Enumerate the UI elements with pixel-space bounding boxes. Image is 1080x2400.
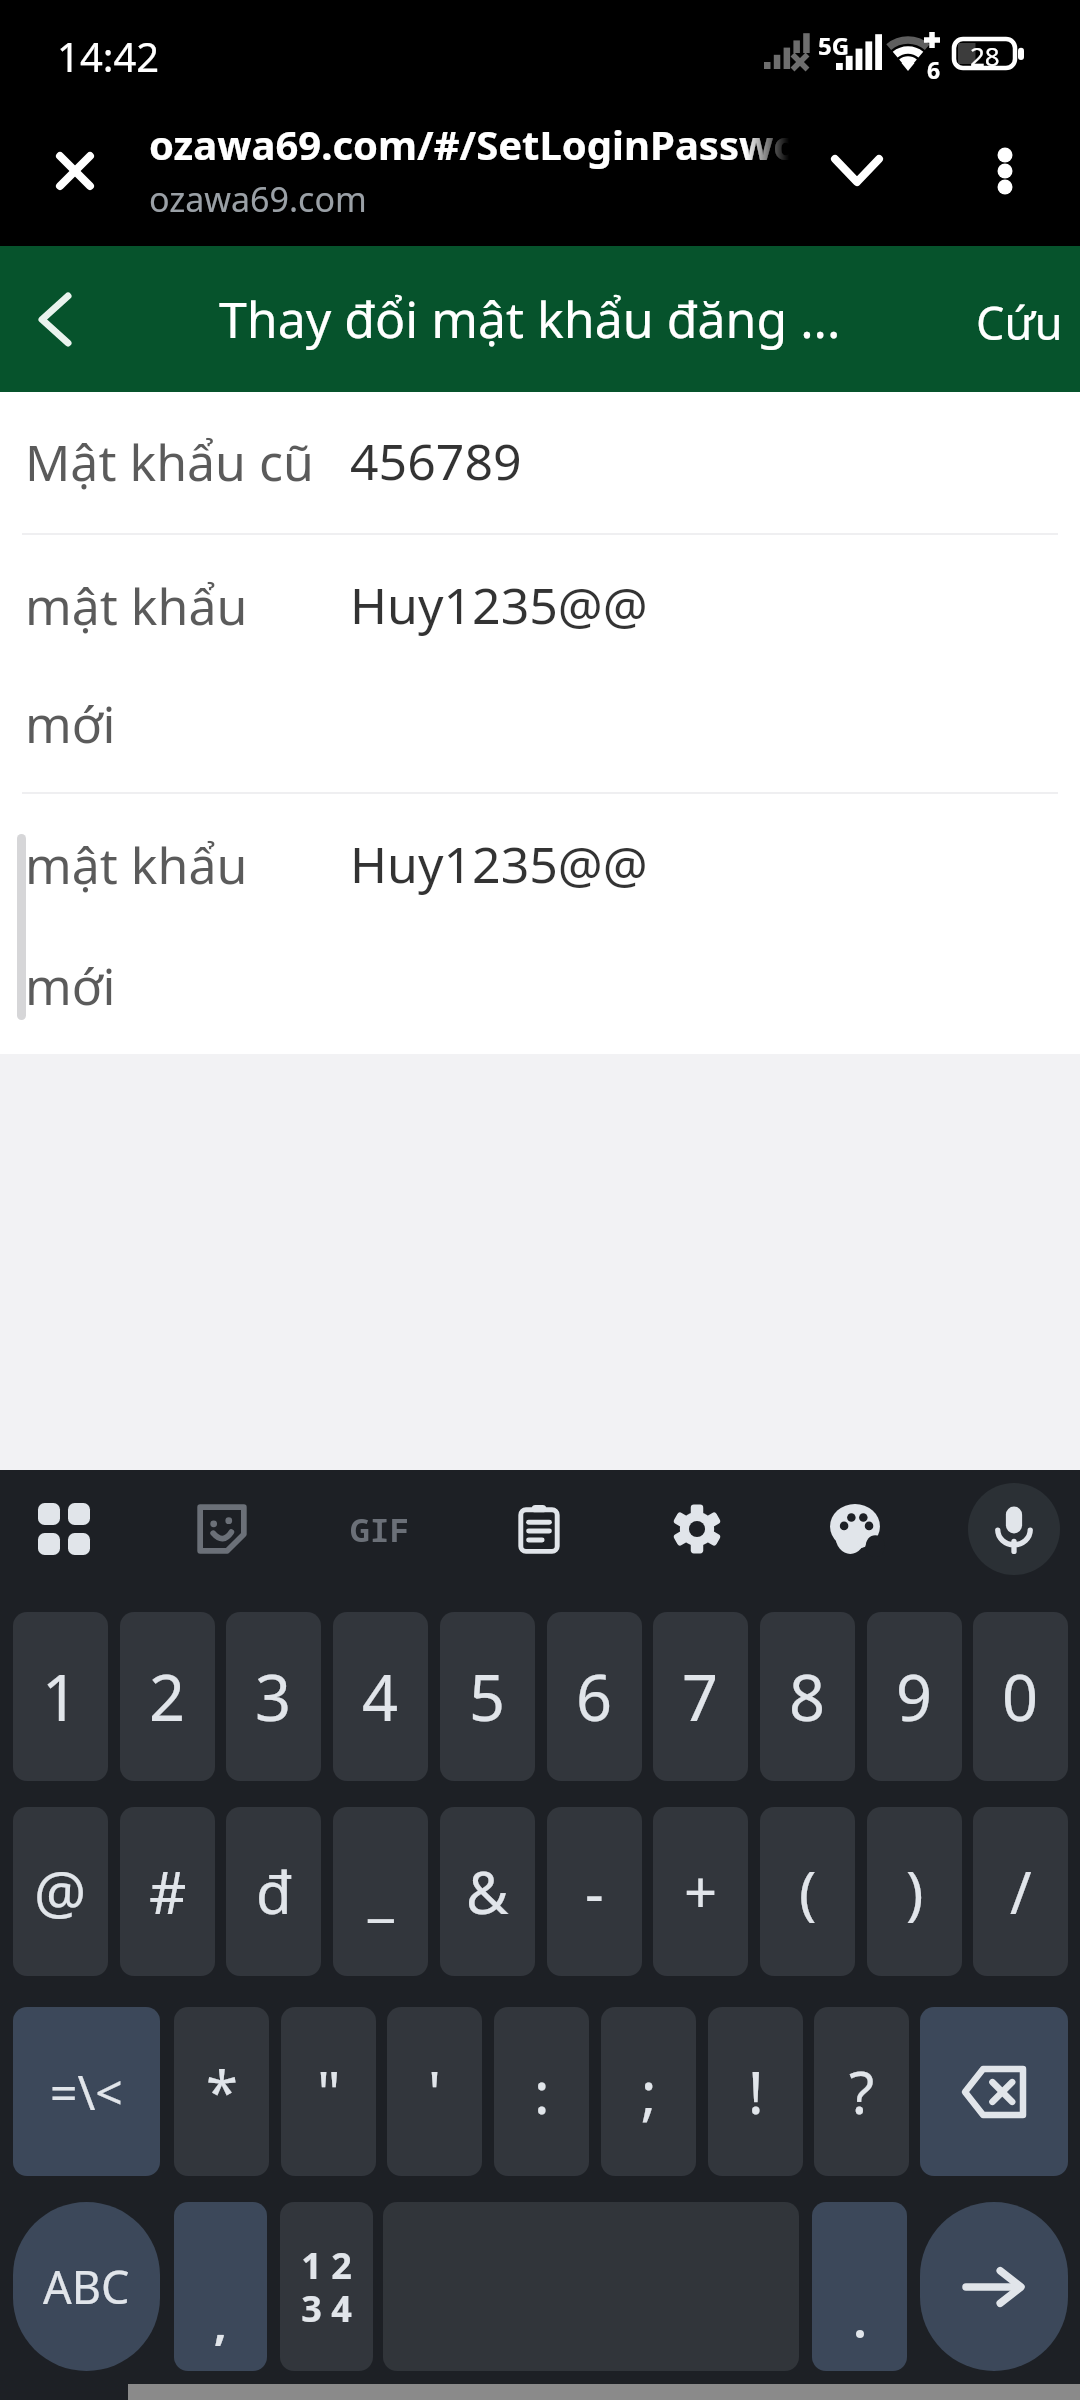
button[interactable]: 9 (867, 1612, 962, 1781)
button[interactable]: _ (333, 1807, 428, 1976)
staticText: : (534, 2052, 550, 2131)
button[interactable]: Mật khẩu cũ (0, 392, 1080, 533)
button[interactable]: & (440, 1807, 535, 1976)
button[interactable]: 1 (13, 1612, 108, 1781)
staticText: & (466, 1852, 509, 1931)
button[interactable]: * (174, 2007, 269, 2176)
button[interactable]: Comma (174, 2202, 267, 2371)
staticText: mới (25, 952, 116, 1020)
staticText: , (214, 2293, 227, 2353)
staticText: ; (641, 2052, 657, 2131)
button[interactable]: + (653, 1807, 748, 1976)
staticText: ) (906, 1852, 924, 1931)
button[interactable]: GIF (334, 1483, 426, 1575)
staticText: # (149, 1852, 187, 1931)
staticText: * (206, 2052, 238, 2131)
staticText: GIF (350, 1507, 410, 1552)
button[interactable]: Enter (920, 2202, 1068, 2371)
staticText: 6 (927, 54, 941, 85)
button[interactable]: Close (33, 129, 117, 213)
button[interactable]: Backspace (920, 2007, 1068, 2176)
button[interactable]: ; (601, 2007, 696, 2176)
button[interactable]: Expand URL (815, 129, 899, 213)
button[interactable]: ) (867, 1807, 962, 1976)
staticText: 5G (818, 29, 850, 62)
staticText: / (1010, 1852, 1032, 1931)
button[interactable]: @ (13, 1807, 108, 1976)
button[interactable]: Stickers (176, 1483, 268, 1575)
staticText: 14:42 (57, 29, 160, 83)
button[interactable]: " (281, 2007, 376, 2176)
staticText: 4 (362, 1654, 399, 1740)
button[interactable]: 8 (760, 1612, 855, 1781)
staticText: ozawa69.com (149, 176, 367, 222)
button[interactable]: 0 (973, 1612, 1068, 1781)
button[interactable]: More options (963, 129, 1047, 213)
staticText: _ (368, 1852, 394, 1931)
button[interactable]: Numbers (280, 2202, 373, 2371)
staticText: Cứu (976, 292, 1063, 353)
staticText: 7 (682, 1654, 719, 1740)
staticText: 8 (789, 1654, 826, 1740)
staticText: 3 (255, 1654, 292, 1740)
staticText: 9 (896, 1654, 933, 1740)
staticText: mới (25, 690, 116, 758)
staticText: mật khẩu (25, 572, 248, 640)
staticText: - (585, 1852, 604, 1931)
staticText: 28 (970, 38, 1000, 73)
staticText: + (684, 1852, 718, 1931)
button[interactable]: - (547, 1807, 642, 1976)
button[interactable]: Voice input (968, 1483, 1060, 1575)
button[interactable]: Back (9, 273, 101, 365)
staticText: Mật khẩu cũ (25, 428, 314, 496)
button[interactable]: mật khẩu (0, 533, 1080, 792)
button[interactable]: 6 (547, 1612, 642, 1781)
button[interactable]: # (120, 1807, 215, 1976)
staticText: Huy1235@@ (350, 571, 648, 639)
button[interactable]: 7 (653, 1612, 748, 1781)
staticText: ! (748, 2052, 764, 2131)
staticText: ( (799, 1852, 817, 1931)
button[interactable]: =\< (13, 2007, 160, 2176)
staticText: ' (428, 2052, 442, 2131)
staticText: ? (849, 2052, 875, 2131)
button[interactable]: 5 (440, 1612, 535, 1781)
staticText: 456789 (350, 427, 522, 495)
staticText: mật khẩu (25, 831, 248, 899)
button[interactable]: ABC (13, 2202, 160, 2371)
staticText: 5 (469, 1654, 506, 1740)
button[interactable]: 4 (333, 1612, 428, 1781)
staticText: " (317, 2052, 341, 2131)
staticText: 6 (576, 1654, 613, 1740)
button[interactable]: Clipboard (493, 1483, 585, 1575)
staticText: ABC (43, 2256, 130, 2317)
button[interactable]: ! (708, 2007, 803, 2176)
button[interactable]: Period (812, 2202, 907, 2371)
button[interactable]: ' (387, 2007, 482, 2176)
button[interactable]: 3 (226, 1612, 321, 1781)
staticText: 2 (149, 1654, 186, 1740)
button[interactable]: Cứu (962, 280, 1077, 365)
button[interactable]: 2 (120, 1612, 215, 1781)
staticText: @ (34, 1852, 87, 1931)
button[interactable]: đ (226, 1807, 321, 1976)
staticText: =\< (50, 2059, 123, 2124)
staticText: 0 (1002, 1654, 1039, 1740)
button[interactable]: / (973, 1807, 1068, 1976)
staticText: đ (256, 1852, 292, 1931)
button[interactable]: ( (760, 1807, 855, 1976)
button[interactable]: Keyboard layouts (18, 1483, 110, 1575)
staticText: Huy1235@@ (350, 830, 648, 898)
staticText: Thay đổi mật khẩu đăng ... (219, 285, 841, 353)
button[interactable]: mật khẩu (0, 792, 1080, 1054)
staticText: 1 (42, 1654, 79, 1740)
button[interactable]: : (494, 2007, 589, 2176)
button[interactable]: Settings (651, 1483, 743, 1575)
staticText: ozawa69.com/#/SetLoginPassword (149, 117, 789, 171)
staticText: 1 2 3 4 (301, 2241, 352, 2333)
button[interactable]: ? (814, 2007, 909, 2176)
button[interactable]: Themes (809, 1483, 901, 1575)
